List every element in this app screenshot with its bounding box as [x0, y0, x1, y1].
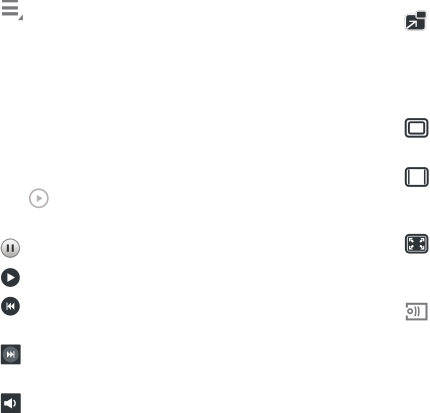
button[interactable]: Fit to width [405, 167, 429, 187]
button[interactable]: Original size [405, 118, 428, 138]
button[interactable]: Previous track [0, 296, 21, 317]
button[interactable]: Next track [1, 344, 21, 364]
button[interactable]: Subtitles [0, 0, 24, 21]
button[interactable]: Play [28, 187, 50, 209]
button[interactable]: Picture in picture [405, 11, 427, 30]
button[interactable]: Pause [0, 237, 21, 259]
button[interactable]: Full screen [405, 234, 428, 253]
button[interactable]: Play [0, 267, 21, 288]
button[interactable]: Volume [1, 393, 21, 413]
button[interactable]: AirPlay [406, 303, 427, 320]
